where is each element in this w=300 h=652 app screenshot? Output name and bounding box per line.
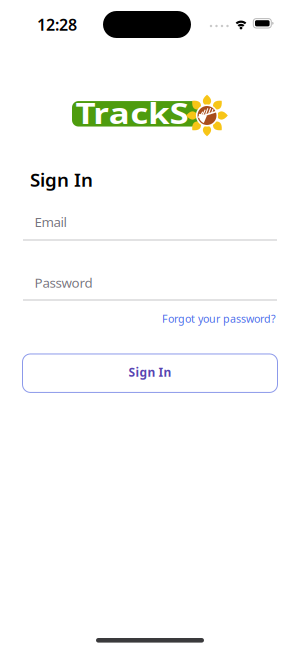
staticText: TrackS [84, 94, 179, 133]
staticText: Forgot your password? [162, 311, 276, 326]
staticText: Sign In [128, 364, 171, 380]
staticText: Password [34, 274, 92, 291]
staticText: Sign In [30, 167, 93, 192]
button[interactable]: Sign In [22, 354, 277, 392]
staticText: Email [34, 213, 66, 231]
button[interactable]: Forgot your password? [162, 311, 276, 326]
staticText: 12:28 [37, 14, 77, 35]
